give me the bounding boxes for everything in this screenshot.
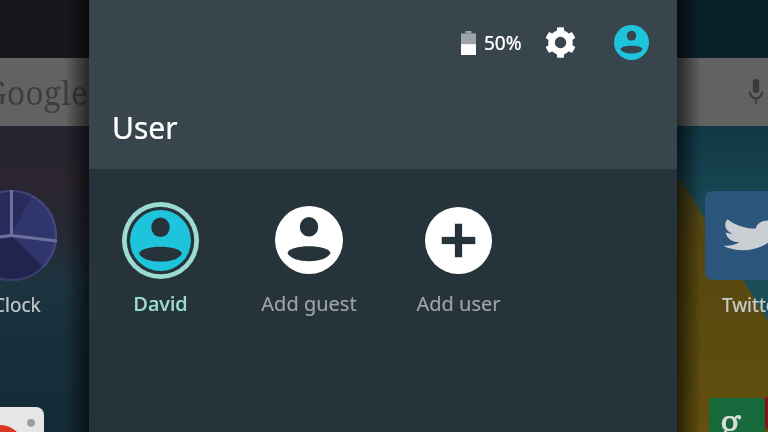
staticText: Clock bbox=[0, 292, 41, 318]
button[interactable]: Google bbox=[0, 58, 768, 126]
staticText: Add user bbox=[416, 290, 501, 317]
button[interactable]: David bbox=[93, 201, 227, 317]
button[interactable] bbox=[0, 407, 44, 432]
other: Voice search bbox=[748, 79, 764, 106]
staticText: 50% bbox=[484, 30, 522, 56]
button[interactable]: Add user bbox=[391, 201, 525, 317]
staticText: Twitter bbox=[722, 292, 768, 318]
button[interactable]: Twitter bbox=[705, 191, 768, 280]
staticText: g bbox=[719, 398, 742, 432]
button[interactable]: Google Plus bbox=[709, 398, 765, 432]
button[interactable]: Settings bbox=[536, 18, 584, 66]
staticText: Google bbox=[0, 71, 89, 115]
staticText: David bbox=[133, 290, 188, 317]
staticText: Add guest bbox=[261, 290, 357, 317]
button[interactable]: Current user bbox=[607, 18, 655, 66]
staticText: User bbox=[112, 107, 178, 148]
button[interactable]: Battery 50 percent bbox=[455, 22, 528, 64]
button[interactable]: Add guest bbox=[242, 201, 376, 317]
